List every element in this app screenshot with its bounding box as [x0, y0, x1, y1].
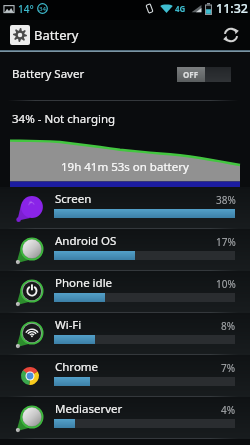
staticText: Mediaserver: [55, 401, 123, 417]
button[interactable]: Battery saver toggle, off: [177, 67, 231, 82]
button[interactable]: Android OS: [0, 229, 250, 271]
staticText: 19h 41m 53s on battery: [61, 159, 189, 175]
button[interactable]: Battery Saver: [0, 52, 250, 100]
button[interactable]: Phone idle: [0, 271, 250, 313]
staticText: 34% - Not charging: [12, 111, 116, 127]
staticText: 8%: [221, 319, 236, 333]
button[interactable]: Wi-Fi: [0, 313, 250, 355]
staticText: 4G: [175, 3, 186, 14]
button[interactable]: Mediaserver: [0, 397, 250, 439]
staticText: Chrome: [55, 359, 99, 375]
button[interactable]: Screen: [0, 187, 250, 229]
staticText: Phone idle: [55, 275, 113, 291]
staticText: 7%: [221, 361, 236, 375]
staticText: Screen: [55, 191, 92, 207]
staticText: 14°: [18, 2, 34, 16]
staticText: OFF: [183, 69, 199, 80]
staticText: 38%: [216, 193, 236, 207]
staticText: 34: [39, 5, 46, 13]
staticText: Wi-Fi: [55, 317, 82, 333]
staticText: 10%: [216, 277, 236, 291]
staticText: Battery: [34, 26, 79, 44]
button[interactable]: Chrome: [0, 355, 250, 397]
button[interactable]: Refresh: [216, 20, 246, 50]
staticText: 4%: [221, 403, 236, 417]
staticText: Battery Saver: [12, 66, 85, 82]
staticText: 11:32: [216, 0, 249, 17]
staticText: 17%: [216, 235, 236, 249]
staticText: Android OS: [55, 233, 117, 249]
